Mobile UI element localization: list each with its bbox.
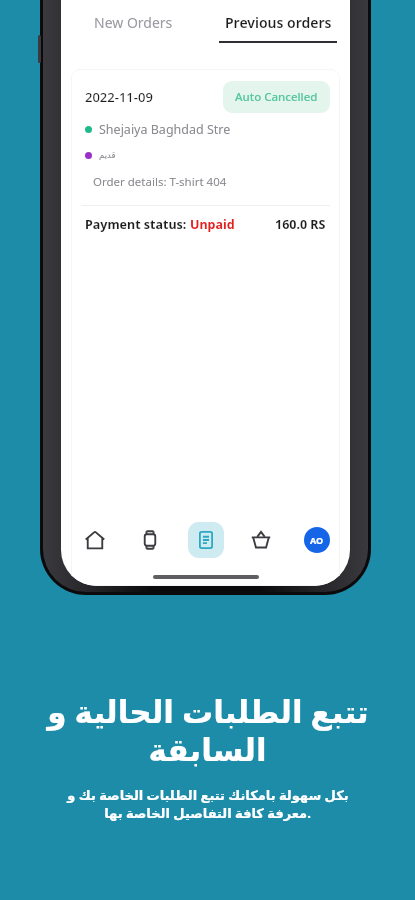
staticText: Auto Cancelled	[235, 89, 318, 105]
button[interactable]: Auto Cancelled	[223, 81, 330, 113]
button[interactable]: Previous orders	[205, 13, 350, 43]
staticText: Unpaid	[190, 216, 235, 233]
staticText: 2022-11-09	[85, 88, 153, 106]
staticText: السابقة	[148, 732, 267, 768]
staticText: 160.0 RS	[275, 216, 326, 233]
staticText: تتبع الطلبات الحالية و	[47, 690, 369, 732]
button[interactable]: Orders	[184, 518, 228, 562]
button[interactable]: Devices	[128, 518, 172, 562]
staticText: Payment status:	[85, 216, 190, 233]
button[interactable]: 2022-11-09	[71, 69, 340, 586]
button[interactable]: Home	[73, 518, 117, 562]
staticText: New Orders	[94, 13, 173, 32]
staticText: بكل سهولة بامكانك تتبع الطلبات الخاصة بك…	[67, 786, 349, 804]
button[interactable]: Account	[295, 518, 339, 562]
staticText: Shejaiya Baghdad Stre	[99, 121, 231, 138]
staticText: Order details: T-shirt 404	[93, 174, 227, 190]
button[interactable]: Cart	[239, 518, 283, 562]
button[interactable]: New Orders	[61, 13, 205, 41]
staticText: قديم	[99, 150, 116, 160]
staticText: AO	[310, 534, 324, 546]
staticText: Previous orders	[225, 13, 332, 32]
staticText: معرفة كافة التفاصيل الخاصة بها.	[104, 804, 311, 822]
